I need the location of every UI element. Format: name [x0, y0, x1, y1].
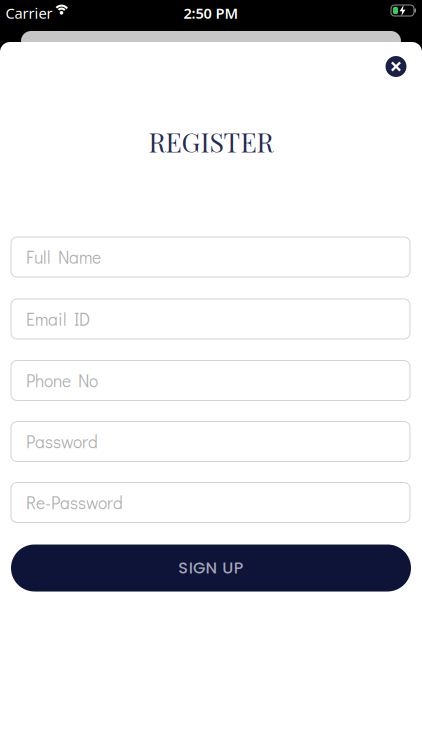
staticText: Carrier [5, 3, 52, 23]
staticText: Full Name [26, 246, 101, 268]
button[interactable]: Full Name [11, 237, 410, 277]
staticText: REGISTER [148, 124, 273, 159]
button[interactable]: Password [11, 421, 410, 461]
button[interactable]: Re-Password [11, 482, 410, 522]
button[interactable]: SIGN UP [11, 544, 411, 591]
staticText: SIGN UP [178, 557, 244, 579]
staticText: Password [26, 430, 98, 453]
button[interactable]: Phone No [11, 360, 410, 400]
staticText: Email ID [26, 308, 90, 330]
button[interactable]: Close [385, 56, 406, 77]
staticText: Phone No [26, 369, 98, 392]
button[interactable]: Email ID [11, 299, 410, 339]
staticText: Re-Password [26, 491, 123, 514]
staticText: 2:50 PM [183, 3, 238, 23]
